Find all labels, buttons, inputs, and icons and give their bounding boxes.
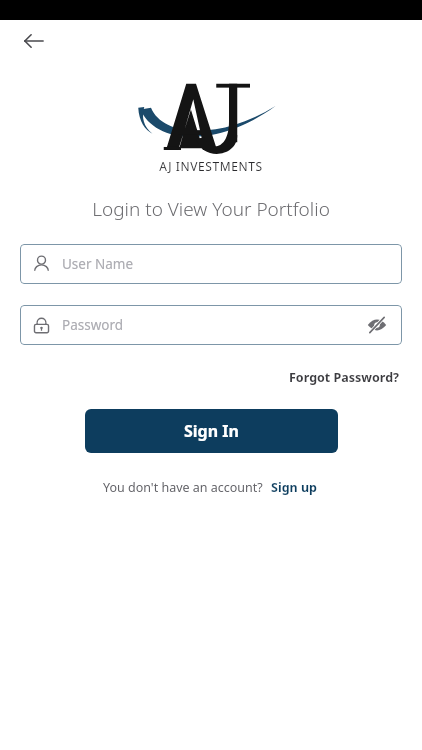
staticText: Sign up bbox=[271, 479, 317, 496]
button[interactable]: Show password bbox=[364, 312, 390, 338]
button[interactable]: Password bbox=[20, 305, 402, 345]
button[interactable]: Back bbox=[14, 21, 54, 61]
staticText: You don't have an account? bbox=[103, 479, 263, 496]
button[interactable]: Sign In bbox=[85, 409, 338, 453]
staticText: Login to View Your Portfolio bbox=[0, 196, 422, 222]
button[interactable]: User Name bbox=[20, 244, 402, 284]
staticText: Forgot Password? bbox=[289, 369, 400, 386]
staticText: User Name bbox=[62, 255, 390, 273]
staticText: Sign In bbox=[184, 420, 239, 442]
staticText: Password bbox=[62, 316, 364, 334]
button[interactable]: Sign up bbox=[269, 475, 319, 500]
button[interactable]: Forgot Password? bbox=[287, 365, 402, 390]
staticText: AJ INVESTMENTS bbox=[0, 158, 422, 174]
